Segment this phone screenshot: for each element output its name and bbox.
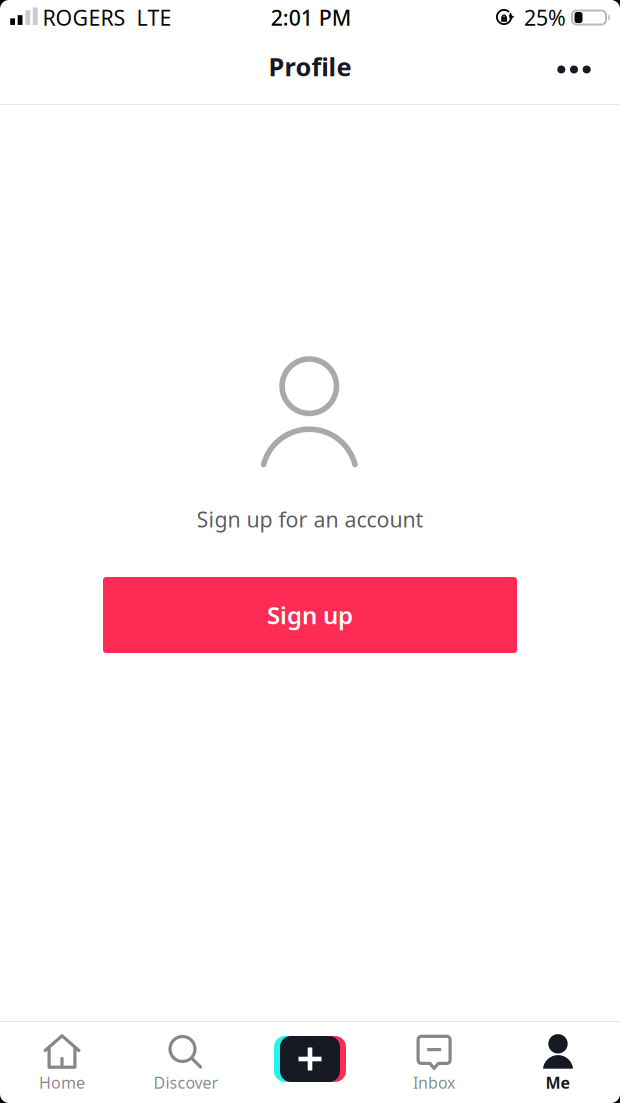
button[interactable]: Home xyxy=(0,1022,124,1103)
button[interactable]: Inbox xyxy=(372,1022,496,1103)
staticText: Sign up xyxy=(267,599,353,631)
staticText: ROGERS xyxy=(43,3,126,32)
staticText: Me xyxy=(545,1072,570,1093)
staticText: LTE xyxy=(137,3,172,32)
button[interactable]: Discover xyxy=(124,1022,248,1103)
staticText: 2:01 PM xyxy=(271,3,352,32)
staticText: Sign up for an account xyxy=(196,505,423,533)
staticText: Inbox xyxy=(413,1072,455,1093)
staticText: Profile xyxy=(268,50,351,83)
staticText: Discover xyxy=(153,1072,218,1093)
staticText: Home xyxy=(39,1072,85,1093)
button[interactable]: Create xyxy=(248,1022,372,1103)
button[interactable]: Sign up xyxy=(103,577,517,653)
staticText: 25% xyxy=(524,3,566,32)
button[interactable]: Me xyxy=(496,1022,620,1103)
button[interactable]: More options xyxy=(542,39,606,99)
